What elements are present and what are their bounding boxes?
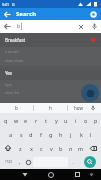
button[interactable]: r — [31, 113, 41, 127]
button[interactable]: q — [0, 113, 11, 127]
button[interactable]: , — [16, 155, 24, 169]
button[interactable]: d — [26, 127, 36, 141]
staticText: r — [35, 117, 38, 124]
button[interactable]: i — [71, 113, 81, 127]
staticText: e — [24, 117, 28, 124]
button[interactable]: z — [15, 141, 26, 155]
button[interactable]: g — [46, 127, 56, 141]
button[interactable]: k — [76, 127, 86, 141]
staticText: j — [70, 131, 72, 138]
staticText: d — [29, 131, 33, 138]
staticText: b — [59, 145, 63, 152]
staticText: x — [30, 145, 33, 152]
button[interactable]: b — [56, 141, 66, 155]
button[interactable]: s — [16, 127, 26, 141]
staticText: , — [19, 159, 21, 165]
button[interactable] — [64, 169, 90, 180]
staticText: k — [80, 131, 83, 138]
staticText: u — [64, 117, 68, 124]
staticText: n — [69, 145, 73, 152]
button[interactable] — [38, 169, 64, 180]
button[interactable]: v — [46, 141, 56, 155]
staticText: i — [75, 117, 77, 124]
button[interactable]: b — [0, 103, 33, 113]
staticText: h — [59, 131, 63, 138]
button[interactable]: . — [69, 155, 79, 169]
button[interactable]: p — [91, 113, 101, 127]
staticText: a wruth — [5, 49, 19, 54]
staticText: how — [74, 105, 83, 111]
staticText: p — [94, 117, 98, 124]
staticText: w — [14, 117, 19, 124]
button[interactable] — [92, 23, 97, 30]
staticText: l — [90, 131, 92, 138]
staticText: Breakfast — [5, 37, 26, 43]
button[interactable]: t — [41, 113, 51, 127]
button[interactable]: how — [68, 103, 101, 113]
button[interactable]: a wruth — [0, 47, 101, 56]
button[interactable] — [24, 155, 32, 169]
button[interactable]: f — [36, 127, 46, 141]
staticText: 9:01 — [2, 2, 9, 7]
button[interactable]: m — [76, 141, 86, 155]
staticText: . — [73, 159, 75, 165]
staticText: h — [49, 105, 52, 111]
button[interactable]: shan ka — [0, 88, 101, 96]
staticText: z — [19, 145, 22, 152]
button[interactable]: l — [86, 127, 96, 141]
button[interactable] — [0, 141, 15, 155]
staticText: Search — [16, 10, 37, 18]
button[interactable]: ?123 — [0, 155, 16, 169]
button[interactable]: y — [51, 113, 61, 127]
button[interactable]: u — [61, 113, 71, 127]
staticText: shan shan — [5, 58, 24, 63]
button[interactable]: Yes — [5, 66, 96, 80]
button[interactable]: Breakfast — [5, 33, 96, 47]
button[interactable] — [4, 11, 11, 18]
staticText: f — [40, 131, 42, 138]
staticText: shan ka — [5, 90, 19, 95]
button[interactable] — [81, 84, 99, 102]
staticText: b — [17, 23, 21, 30]
staticText: ?123 — [5, 160, 12, 164]
staticText: G — [12, 2, 15, 7]
button[interactable] — [79, 155, 101, 169]
button[interactable]: b — [4, 20, 97, 33]
staticText: a — [9, 131, 13, 138]
button[interactable]: shan shan — [0, 56, 101, 65]
staticText: b — [15, 105, 18, 111]
staticText: Yes — [5, 70, 13, 76]
staticText: g — [49, 131, 53, 138]
staticText: t — [45, 117, 47, 124]
button[interactable]: a — [5, 127, 16, 141]
staticText: s — [20, 131, 23, 138]
button[interactable] — [11, 169, 38, 180]
staticText: c — [40, 145, 43, 152]
button[interactable] — [78, 24, 84, 30]
staticText: o — [84, 117, 88, 124]
staticText: m — [78, 145, 84, 152]
button[interactable]: w — [11, 113, 21, 127]
button[interactable] — [89, 173, 94, 177]
staticText: tgw — [5, 82, 12, 87]
button[interactable] — [86, 141, 101, 155]
button[interactable]: h — [34, 103, 67, 113]
staticText: v — [50, 145, 53, 152]
staticText: q — [4, 117, 8, 124]
button[interactable]: tgw — [0, 80, 101, 88]
button[interactable]: n — [66, 141, 76, 155]
button[interactable]: c — [36, 141, 46, 155]
button[interactable]: j — [66, 127, 76, 141]
button[interactable]: o — [81, 113, 91, 127]
button[interactable]: e — [21, 113, 31, 127]
button[interactable]: x — [26, 141, 36, 155]
button[interactable]: h — [56, 127, 66, 141]
staticText: y — [55, 117, 58, 124]
button[interactable] — [90, 11, 97, 18]
